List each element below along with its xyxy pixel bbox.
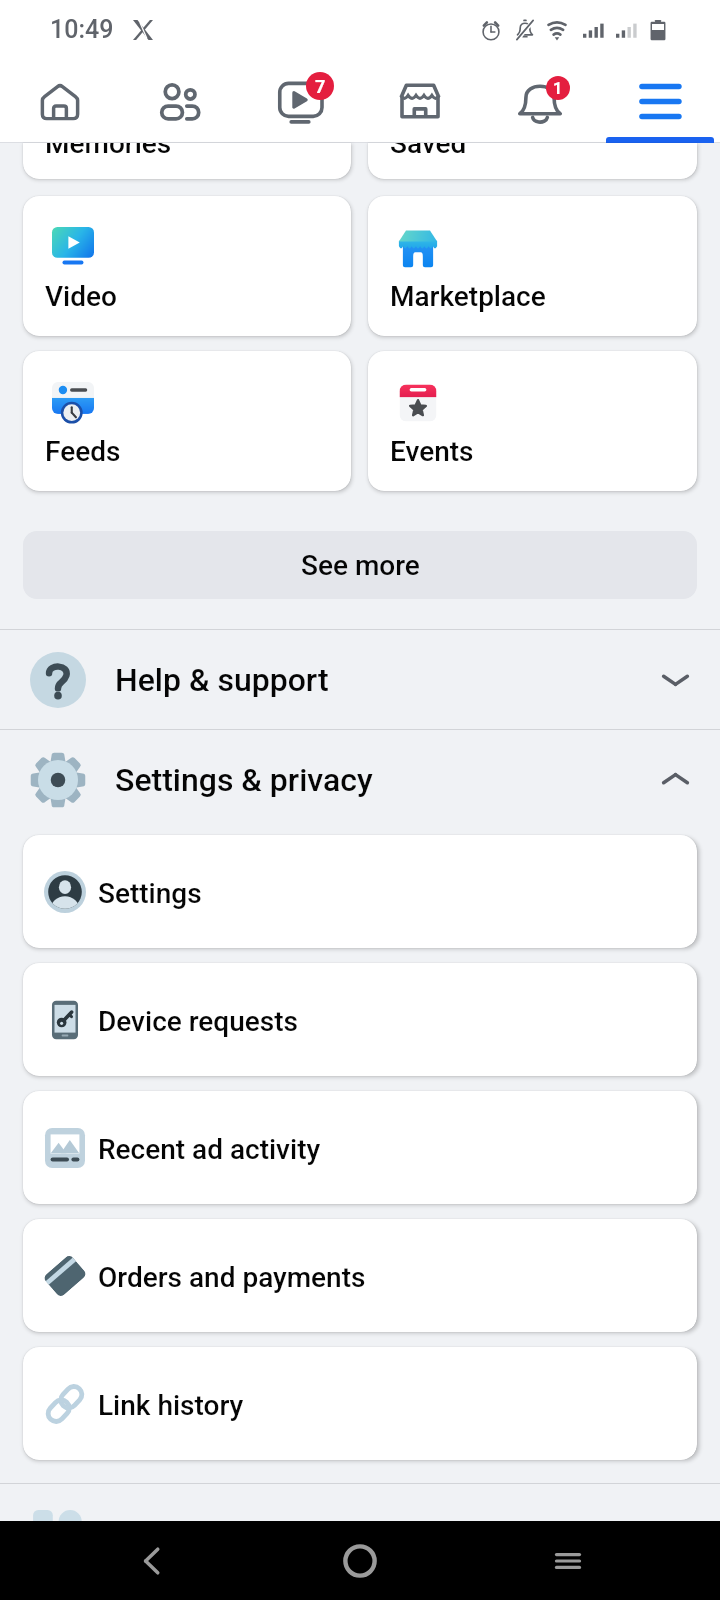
button[interactable]: Events	[368, 351, 697, 491]
staticText: Device requests	[98, 1005, 298, 1038]
button[interactable]: Orders and payments	[23, 1219, 697, 1332]
button[interactable]: Settings & privacy	[0, 730, 720, 829]
staticText: Settings	[98, 877, 202, 910]
staticText: Recent ad activity	[98, 1133, 321, 1166]
button[interactable]: Feeds	[23, 351, 351, 491]
button[interactable]: Device requests	[23, 963, 697, 1076]
staticText: 10:49	[50, 15, 114, 44]
button[interactable]: Recent apps	[552, 1545, 584, 1577]
staticText: See more	[301, 549, 420, 582]
button[interactable]: Link history	[23, 1347, 697, 1460]
button[interactable]: Home	[0, 60, 120, 143]
button[interactable]: Recent ad activity	[23, 1091, 697, 1204]
button[interactable]	[0, 1484, 720, 1583]
staticText: Memories	[45, 143, 172, 160]
staticText: Marketplace	[390, 280, 546, 313]
staticText: 1	[553, 79, 563, 98]
button[interactable]: Notifications	[480, 60, 600, 143]
button[interactable]: See more	[23, 531, 697, 599]
staticText: Feeds	[45, 435, 121, 468]
button[interactable]: Menu	[600, 60, 720, 143]
staticText: Link history	[98, 1389, 244, 1422]
button[interactable]: Help & support	[0, 630, 720, 729]
button[interactable]: Back	[136, 1545, 168, 1577]
button[interactable]: Marketplace	[368, 196, 697, 336]
button[interactable]: Friends	[120, 60, 240, 143]
staticText: Settings & privacy	[115, 761, 373, 799]
button[interactable]: Settings	[23, 835, 697, 948]
staticText: Orders and payments	[98, 1261, 366, 1294]
button[interactable]: Marketplace	[360, 60, 480, 143]
button[interactable]: Memories	[23, 143, 351, 179]
staticText: Saved	[390, 143, 467, 160]
button[interactable]: Video	[23, 196, 351, 336]
staticText: Video	[45, 280, 117, 313]
button[interactable]: Saved	[368, 143, 697, 179]
staticText: Help & support	[115, 661, 329, 699]
staticText: 7	[315, 76, 326, 97]
button[interactable]: Video	[240, 60, 360, 143]
staticText: Events	[390, 435, 474, 468]
button[interactable]: Home	[343, 1544, 377, 1578]
